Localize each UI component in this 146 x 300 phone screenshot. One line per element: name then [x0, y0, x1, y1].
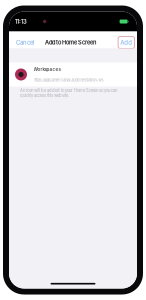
- button[interactable]: Cancel: [9, 37, 39, 48]
- staticText: Add to Home Screen: [45, 39, 96, 46]
- staticText: 11:13: [15, 18, 27, 25]
- staticText: An icon will be added to your Home Scree…: [20, 88, 117, 98]
- staticText: Workspaces: [33, 67, 60, 72]
- staticText: https://app.americanai.ai/orchestration-…: [33, 78, 103, 82]
- staticText: Cancel: [16, 39, 34, 46]
- button[interactable]: Workspaces: [9, 62, 137, 86]
- button[interactable]: Add: [118, 36, 137, 48]
- staticText: Add: [120, 39, 132, 46]
